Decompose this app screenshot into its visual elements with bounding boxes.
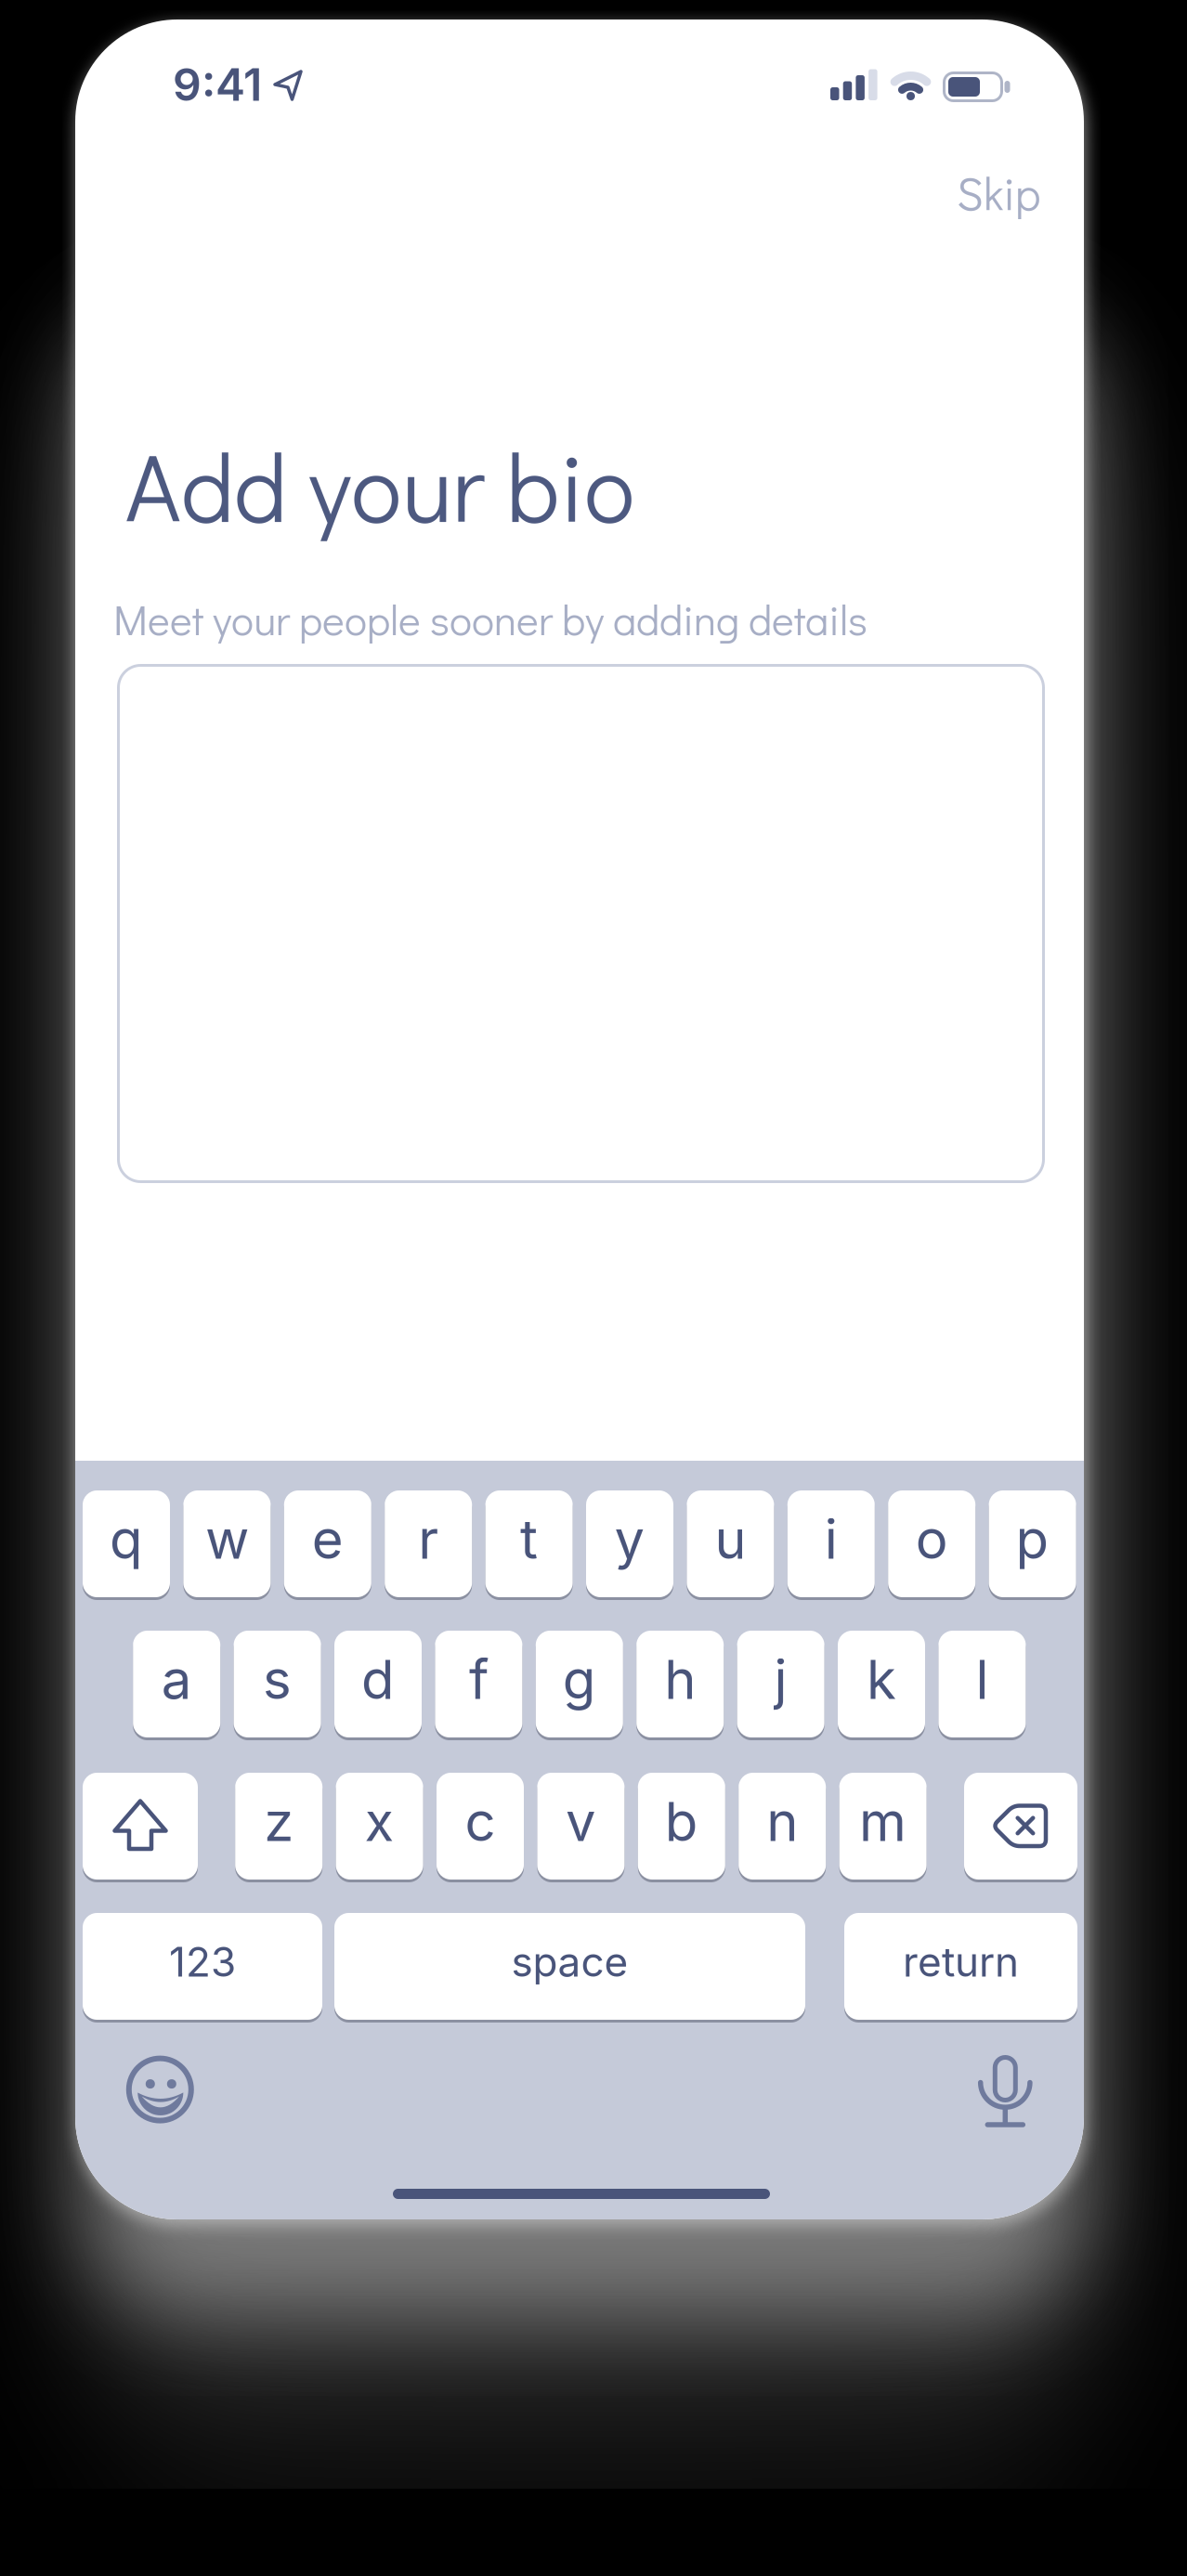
button[interactable]: c [437,1773,524,1882]
button[interactable]: d [334,1631,422,1740]
staticText: o [916,1507,948,1572]
staticText: f [469,1647,488,1712]
staticText: a [161,1647,192,1712]
button[interactable]: o [888,1490,975,1600]
staticText: q [110,1507,143,1572]
staticText: Add your bio [125,423,634,547]
button[interactable]: w [183,1490,271,1600]
staticText: c [465,1789,496,1854]
button[interactable]: u [687,1490,774,1600]
staticText: x [365,1789,394,1854]
button[interactable]: t [485,1490,573,1600]
staticText: n [766,1789,798,1854]
button[interactable] [126,2056,194,2123]
button[interactable]: z [235,1773,322,1882]
button[interactable]: i [787,1490,875,1600]
button[interactable]: f [435,1631,522,1740]
button[interactable]: y [586,1490,673,1600]
button[interactable] [117,664,1045,1183]
button[interactable] [964,1773,1077,1882]
staticText: e [312,1507,343,1572]
button[interactable]: a [133,1631,220,1740]
staticText: g [563,1647,596,1712]
button[interactable]: x [336,1773,423,1882]
button[interactable]: n [739,1773,826,1882]
staticText: r [418,1507,439,1572]
button[interactable]: b [638,1773,725,1882]
staticText: return [903,1937,1019,1986]
button[interactable]: h [636,1631,724,1740]
button[interactable]: j [737,1631,824,1740]
staticText: y [614,1507,645,1572]
button[interactable]: q [83,1490,170,1600]
staticText: t [520,1507,538,1572]
staticText: 123 [169,1937,236,1986]
button[interactable]: r [385,1490,472,1600]
staticText: z [264,1789,294,1854]
button[interactable]: m [839,1773,927,1882]
button[interactable]: 123 [83,1913,322,2022]
button[interactable]: return [844,1913,1077,2022]
staticText: l [976,1647,989,1712]
staticText: h [664,1647,696,1712]
button[interactable]: g [536,1631,623,1740]
staticText: 9:41 [173,58,262,112]
button[interactable]: p [989,1490,1076,1600]
staticText: w [205,1507,249,1572]
button[interactable]: s [234,1631,321,1740]
staticText: d [361,1647,395,1712]
button[interactable]: space [334,1913,805,2022]
staticText: space [511,1937,628,1986]
staticText: b [665,1789,698,1854]
staticText: v [566,1789,596,1854]
staticText: Meet your people sooner by adding detail… [113,592,867,646]
staticText: s [263,1647,292,1712]
staticText: u [715,1507,746,1572]
staticText: i [825,1507,838,1572]
staticText: p [1016,1507,1049,1572]
button[interactable]: l [938,1631,1026,1740]
staticText: j [774,1647,787,1712]
button[interactable]: v [537,1773,625,1882]
button[interactable]: e [284,1490,371,1600]
staticText: k [867,1647,896,1712]
button[interactable]: Skip [762,162,1040,223]
button[interactable] [83,1773,198,1882]
staticText: Skip [957,162,1040,222]
button[interactable] [977,2048,1033,2129]
staticText: m [859,1789,907,1854]
button[interactable]: k [838,1631,925,1740]
